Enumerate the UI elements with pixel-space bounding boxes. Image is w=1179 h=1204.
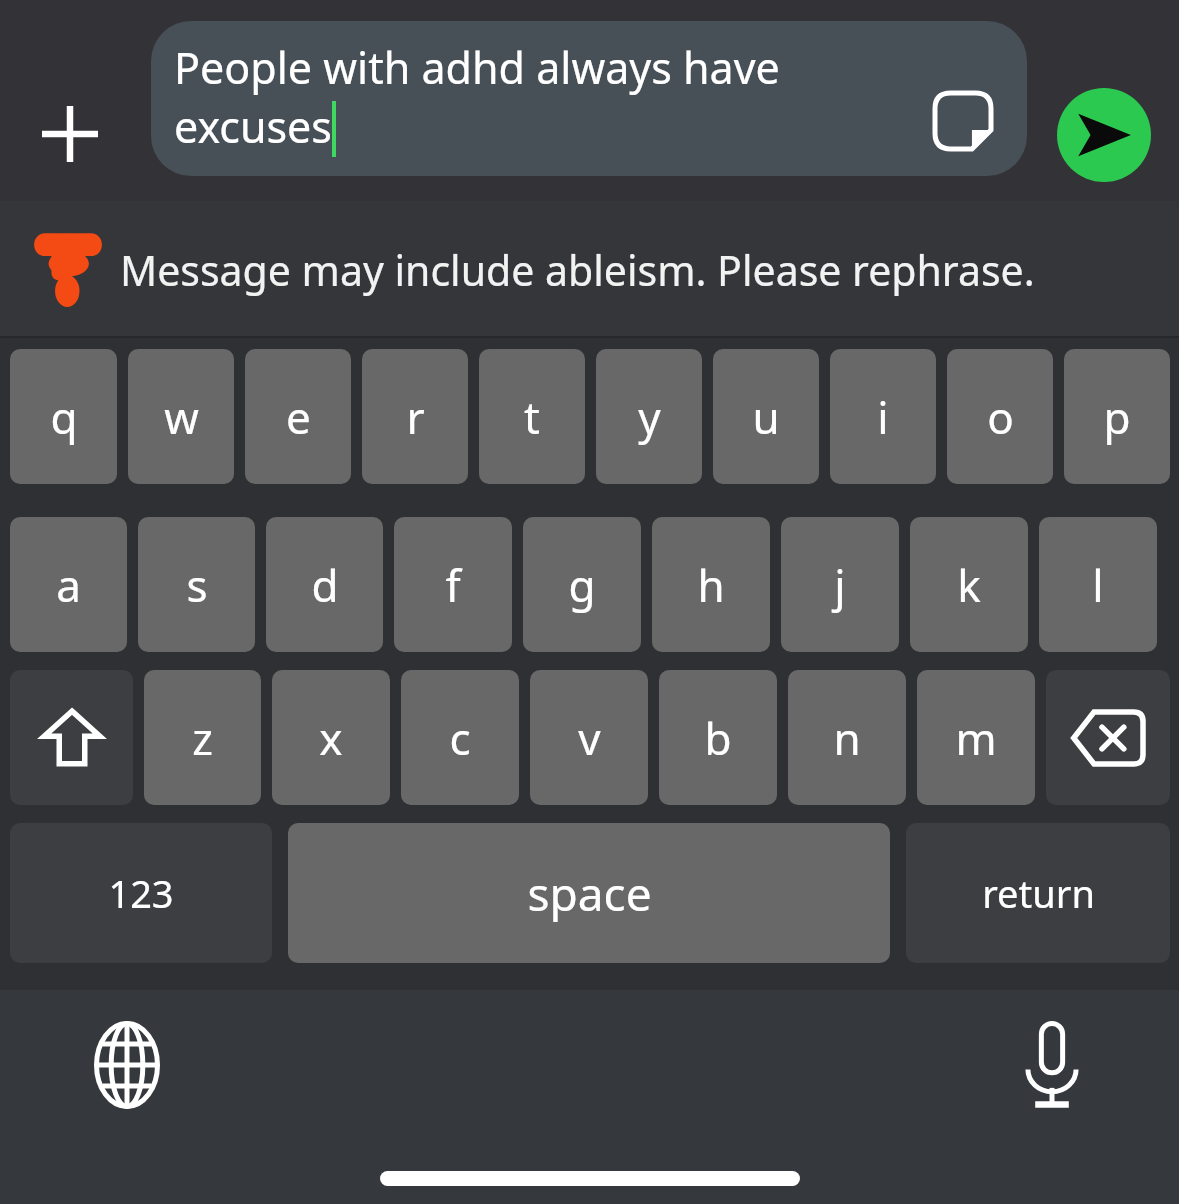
button[interactable]: r xyxy=(362,349,468,484)
button[interactable]: e xyxy=(245,349,351,484)
button[interactable]: m xyxy=(917,670,1035,805)
staticText: q xyxy=(50,387,78,447)
staticText: c xyxy=(449,708,471,768)
staticText: h xyxy=(697,555,725,615)
staticText: b xyxy=(704,708,732,768)
button[interactable]: a xyxy=(10,517,127,652)
staticText: j xyxy=(834,555,846,615)
staticText: w xyxy=(164,387,199,447)
staticText: z xyxy=(192,708,213,768)
button[interactable]: z xyxy=(144,670,261,805)
button[interactable]: f xyxy=(394,517,512,652)
staticText: r xyxy=(406,387,425,447)
button[interactable]: g xyxy=(523,517,641,652)
button[interactable]: j xyxy=(781,517,899,652)
button[interactable]: o xyxy=(947,349,1053,484)
staticText: m xyxy=(955,708,997,768)
button[interactable]: x xyxy=(272,670,390,805)
staticText: e xyxy=(286,387,311,447)
button[interactable]: l xyxy=(1039,517,1157,652)
button[interactable]: t xyxy=(479,349,585,484)
button[interactable]: w xyxy=(128,349,234,484)
button[interactable]: People with adhd always have xyxy=(151,21,1027,176)
staticText: v xyxy=(578,708,601,768)
staticText: f xyxy=(445,555,461,615)
staticText: t xyxy=(524,387,540,447)
staticText: return xyxy=(982,867,1095,919)
staticText: a xyxy=(56,555,81,615)
staticText: i xyxy=(877,387,889,447)
staticText: space xyxy=(527,862,652,925)
button[interactable]: c xyxy=(401,670,519,805)
staticText: Message may include ableism. Please reph… xyxy=(120,242,1035,298)
button[interactable]: b xyxy=(659,670,777,805)
button[interactable]: Shift xyxy=(10,670,133,805)
button[interactable]: return xyxy=(906,823,1170,963)
button[interactable]: d xyxy=(266,517,383,652)
button[interactable]: h xyxy=(652,517,770,652)
button[interactable]: Backspace xyxy=(1046,670,1170,805)
button[interactable]: n xyxy=(788,670,906,805)
button[interactable]: Change language xyxy=(80,1018,174,1112)
button[interactable]: Dictate xyxy=(1005,1018,1099,1112)
button[interactable]: Send xyxy=(1057,88,1151,182)
button[interactable]: p xyxy=(1064,349,1170,484)
staticText: n xyxy=(833,708,861,768)
staticText: d xyxy=(311,555,339,615)
staticText: People with adhd always have xyxy=(174,38,780,97)
staticText: o xyxy=(987,387,1014,447)
staticText: l xyxy=(1092,555,1104,615)
button[interactable]: i xyxy=(830,349,936,484)
button[interactable]: Attach xyxy=(24,88,116,180)
button[interactable]: 123 xyxy=(10,823,272,963)
button[interactable]: space xyxy=(288,823,890,963)
staticText: g xyxy=(568,555,596,615)
staticText: excuses xyxy=(174,97,332,156)
staticText: s xyxy=(186,555,208,615)
staticText: u xyxy=(752,387,780,447)
staticText: y xyxy=(638,387,661,447)
staticText: k xyxy=(957,555,981,615)
button[interactable]: u xyxy=(713,349,819,484)
button[interactable]: y xyxy=(596,349,702,484)
staticText: p xyxy=(1103,387,1131,447)
button[interactable]: q xyxy=(10,349,117,484)
button[interactable]: Stickers xyxy=(927,85,999,157)
staticText: 123 xyxy=(108,867,174,919)
button[interactable]: v xyxy=(530,670,648,805)
button[interactable]: k xyxy=(910,517,1028,652)
button[interactable]: s xyxy=(138,517,255,652)
staticText: x xyxy=(319,708,343,768)
